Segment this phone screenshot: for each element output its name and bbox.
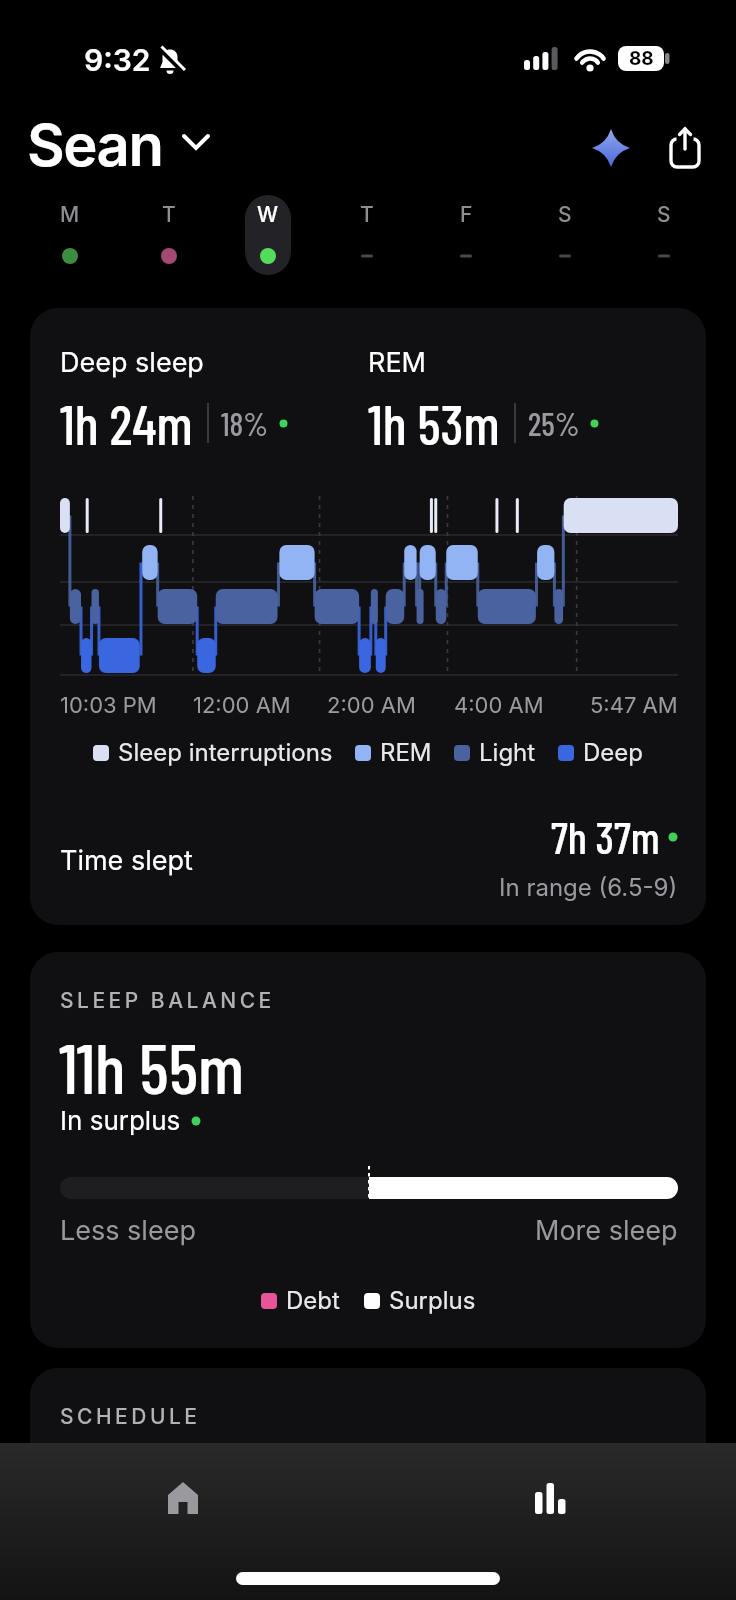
button[interactable]: S: [634, 196, 694, 274]
button[interactable]: [667, 126, 703, 170]
staticText: 2:00 AM: [327, 692, 416, 719]
staticText: In surplus: [60, 1105, 181, 1136]
staticText: S: [657, 202, 671, 227]
button[interactable]: Deep sleep: [30, 308, 706, 925]
button[interactable]: F: [436, 196, 496, 274]
staticText: 10:03 PM: [60, 692, 157, 719]
button[interactable]: T: [337, 196, 397, 274]
staticText: Surplus: [389, 1286, 476, 1315]
staticText: Less sleep: [60, 1214, 196, 1247]
button[interactable]: W: [238, 196, 298, 274]
staticText: M: [60, 202, 80, 227]
staticText: SCHEDULE: [60, 1404, 201, 1429]
button[interactable]: S: [535, 196, 595, 274]
button[interactable]: M: [40, 196, 100, 274]
staticText: T: [360, 202, 374, 227]
staticText: In range (6.5-9): [499, 873, 678, 902]
staticText: Debt: [286, 1286, 340, 1315]
staticText: S: [558, 202, 572, 227]
button[interactable]: SCHEDULE: [30, 1368, 706, 1528]
staticText: 88: [629, 47, 654, 70]
button[interactable]: [130, 1453, 236, 1543]
staticText: SLEEP BALANCE: [60, 988, 275, 1013]
staticText: 5:47 AM: [590, 692, 678, 719]
staticText: W: [257, 202, 279, 227]
staticText: Sean: [27, 110, 163, 180]
staticText: 4:00 AM: [454, 692, 544, 719]
staticText: 1h 53m: [368, 390, 500, 456]
staticText: 7h 37m: [551, 810, 660, 863]
button[interactable]: T: [139, 196, 199, 274]
button[interactable]: [498, 1453, 604, 1543]
button[interactable]: [592, 129, 630, 167]
button[interactable]: SLEEP BALANCE: [30, 952, 706, 1348]
staticText: 18%: [221, 404, 269, 442]
staticText: T: [162, 202, 176, 227]
staticText: Time slept: [60, 844, 193, 877]
staticText: More sleep: [535, 1214, 678, 1247]
staticText: Light: [479, 738, 536, 767]
staticText: Deep sleep: [60, 346, 204, 379]
staticText: 9:32: [84, 42, 151, 78]
button[interactable]: Sean: [27, 110, 211, 180]
staticText: Sleep interruptions: [118, 738, 333, 767]
staticText: Deep: [583, 738, 643, 767]
staticText: F: [460, 202, 473, 227]
staticText: 12:00 AM: [193, 692, 291, 719]
staticText: 25%: [528, 404, 580, 442]
staticText: 11h 55m: [59, 1024, 245, 1108]
staticText: REM: [368, 346, 426, 379]
staticText: REM: [380, 738, 432, 767]
staticText: 1h 24m: [60, 390, 193, 456]
